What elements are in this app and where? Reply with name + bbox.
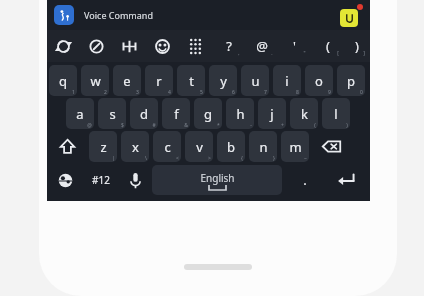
- button[interactable]: l: [322, 98, 350, 129]
- staticText: 5: [200, 89, 203, 96]
- button[interactable]: Emoji: [147, 32, 178, 60]
- staticText: {: [241, 155, 243, 162]
- staticText: [: [337, 50, 339, 57]
- staticText: n: [259, 138, 268, 156]
- button[interactable]: s: [98, 98, 126, 129]
- button[interactable]: m: [281, 131, 309, 162]
- button[interactable]: w: [81, 65, 109, 96]
- button[interactable]: b: [217, 131, 245, 162]
- button[interactable]: ': [278, 31, 311, 61]
- staticText: >: [208, 155, 211, 162]
- button[interactable]: Stickers: [81, 32, 112, 60]
- button[interactable]: (: [311, 31, 344, 61]
- button[interactable]: Change language: [48, 165, 82, 195]
- staticText: @: [256, 37, 268, 55]
- button[interactable]: t: [177, 65, 205, 96]
- staticText: 9: [328, 89, 331, 96]
- staticText: .: [271, 50, 273, 57]
- staticText: i: [285, 72, 289, 90]
- button[interactable]: #12: [83, 164, 119, 196]
- staticText: 1: [72, 89, 75, 96]
- staticText: ': [293, 37, 296, 55]
- button[interactable]: j: [258, 98, 286, 129]
- staticText: |: [112, 155, 115, 162]
- button[interactable]: ?: [212, 31, 245, 61]
- button[interactable]: Enter: [327, 165, 365, 195]
- button[interactable]: y: [209, 65, 237, 96]
- button[interactable]: Backspace: [312, 131, 350, 162]
- staticText: z: [100, 138, 107, 156]
- button[interactable]: Clipboard: [340, 9, 358, 27]
- staticText: \: [145, 155, 147, 162]
- button[interactable]: h: [226, 98, 254, 129]
- staticText: ): [355, 37, 359, 55]
- staticText: Voice Command: [84, 9, 153, 21]
- button[interactable]: p: [337, 65, 365, 96]
- staticText: q: [59, 72, 67, 90]
- button[interactable]: n: [249, 131, 277, 162]
- staticText: *: [217, 122, 220, 129]
- staticText: ): [346, 122, 348, 129]
- staticText: 6: [232, 89, 235, 96]
- button[interactable]: .: [283, 164, 326, 196]
- button[interactable]: a: [66, 98, 94, 129]
- staticText: <: [176, 155, 179, 162]
- button[interactable]: f: [162, 98, 190, 129]
- button[interactable]: g: [194, 98, 222, 129]
- button[interactable]: Voice typing: [120, 165, 150, 195]
- staticText: -: [250, 122, 252, 129]
- staticText: (: [314, 122, 316, 129]
- staticText: 7: [264, 89, 267, 96]
- staticText: 3: [136, 89, 139, 96]
- staticText: 8: [296, 89, 299, 96]
- button[interactable]: x: [121, 131, 149, 162]
- staticText: 4: [168, 89, 171, 96]
- staticText: #: [152, 122, 156, 129]
- staticText: k: [301, 105, 308, 123]
- button[interactable]: r: [145, 65, 173, 96]
- staticText: &: [184, 122, 188, 129]
- staticText: u: [251, 72, 260, 90]
- staticText: t: [189, 72, 194, 90]
- staticText: w: [90, 72, 101, 90]
- button[interactable]: Voice input app: [54, 5, 74, 25]
- staticText: j: [270, 105, 274, 123]
- button[interactable]: k: [290, 98, 318, 129]
- staticText: ~: [304, 155, 307, 162]
- button[interactable]: u: [241, 65, 269, 96]
- staticText: .: [303, 171, 307, 189]
- button[interactable]: English: [152, 165, 282, 195]
- button[interactable]: c: [153, 131, 181, 162]
- staticText: y: [220, 72, 227, 90]
- staticText: p: [347, 72, 355, 90]
- staticText: x: [132, 138, 139, 156]
- staticText: }: [273, 155, 275, 162]
- staticText: ?: [226, 37, 232, 55]
- button[interactable]: Shift: [48, 131, 86, 162]
- staticText: @: [87, 122, 92, 129]
- button[interactable]: e: [113, 65, 141, 96]
- button[interactable]: Text tools: [114, 32, 145, 60]
- staticText: ,: [238, 50, 240, 57]
- button[interactable]: v: [185, 131, 213, 162]
- staticText: +: [281, 122, 284, 129]
- button[interactable]: Keypad: [180, 32, 211, 60]
- button[interactable]: Sync: [48, 32, 79, 60]
- button[interactable]: ): [344, 31, 370, 61]
- button[interactable]: o: [305, 65, 333, 96]
- button[interactable]: Voice Command: [84, 9, 153, 21]
- staticText: ": [303, 50, 306, 57]
- staticText: f: [174, 105, 179, 123]
- staticText: d: [140, 105, 148, 123]
- staticText: g: [204, 105, 212, 123]
- button[interactable]: @: [245, 31, 278, 61]
- staticText: e: [123, 72, 131, 90]
- button[interactable]: i: [273, 65, 301, 96]
- staticText: b: [227, 138, 235, 156]
- staticText: a: [76, 105, 84, 123]
- staticText: $: [121, 122, 124, 129]
- button[interactable]: z: [89, 131, 117, 162]
- button[interactable]: q: [49, 65, 77, 96]
- button[interactable]: d: [130, 98, 158, 129]
- staticText: s: [109, 105, 116, 123]
